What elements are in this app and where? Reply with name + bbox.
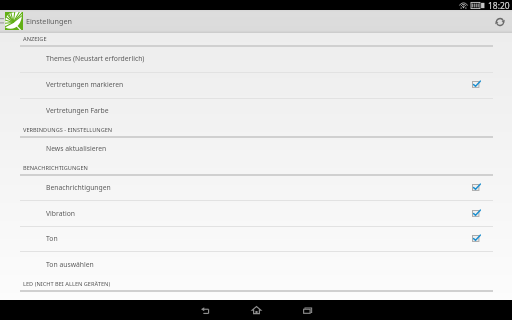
staticText: Einstellungen — [26, 16, 72, 26]
staticText: Ton — [46, 234, 58, 243]
button[interactable]: Back — [188, 300, 222, 320]
button[interactable]: Vibration — [0, 201, 512, 226]
button[interactable]: Recents — [290, 300, 324, 320]
staticText: VERBINDUNGS - EINSTELLUNGEN — [23, 126, 113, 134]
button[interactable]: Refresh — [490, 10, 512, 33]
button[interactable]: Benachrichtigungen — [0, 175, 512, 200]
button[interactable]: Vertretungen Farbe — [0, 98, 512, 123]
staticText: Themes (Neustart erforderlich) — [46, 54, 145, 63]
staticText: Vibration — [46, 209, 76, 218]
staticText: Vertretungen markieren — [46, 80, 124, 89]
staticText: Ton auswählen — [46, 260, 94, 269]
staticText: BENACHRICHTIGUNGEN — [23, 164, 88, 172]
staticText: Vertretungen Farbe — [46, 106, 109, 115]
button[interactable]: Navigate up — [0, 10, 512, 33]
button[interactable]: News aktualisieren — [0, 136, 512, 161]
button[interactable]: Home — [239, 300, 273, 320]
button[interactable]: Themes (Neustart erforderlich) — [0, 46, 512, 71]
staticText: 18:20 — [488, 0, 510, 10]
button[interactable]: Ton auswählen — [0, 252, 512, 277]
staticText: Benachrichtigungen — [46, 183, 111, 192]
staticText: News aktualisieren — [46, 144, 107, 153]
button[interactable]: Vertretungen markieren — [0, 72, 512, 97]
staticText: ANZEIGE — [23, 35, 47, 43]
staticText: LED (NICHT BEI ALLEN GERÄTEN) — [23, 280, 111, 288]
button[interactable]: Ton — [0, 226, 512, 251]
